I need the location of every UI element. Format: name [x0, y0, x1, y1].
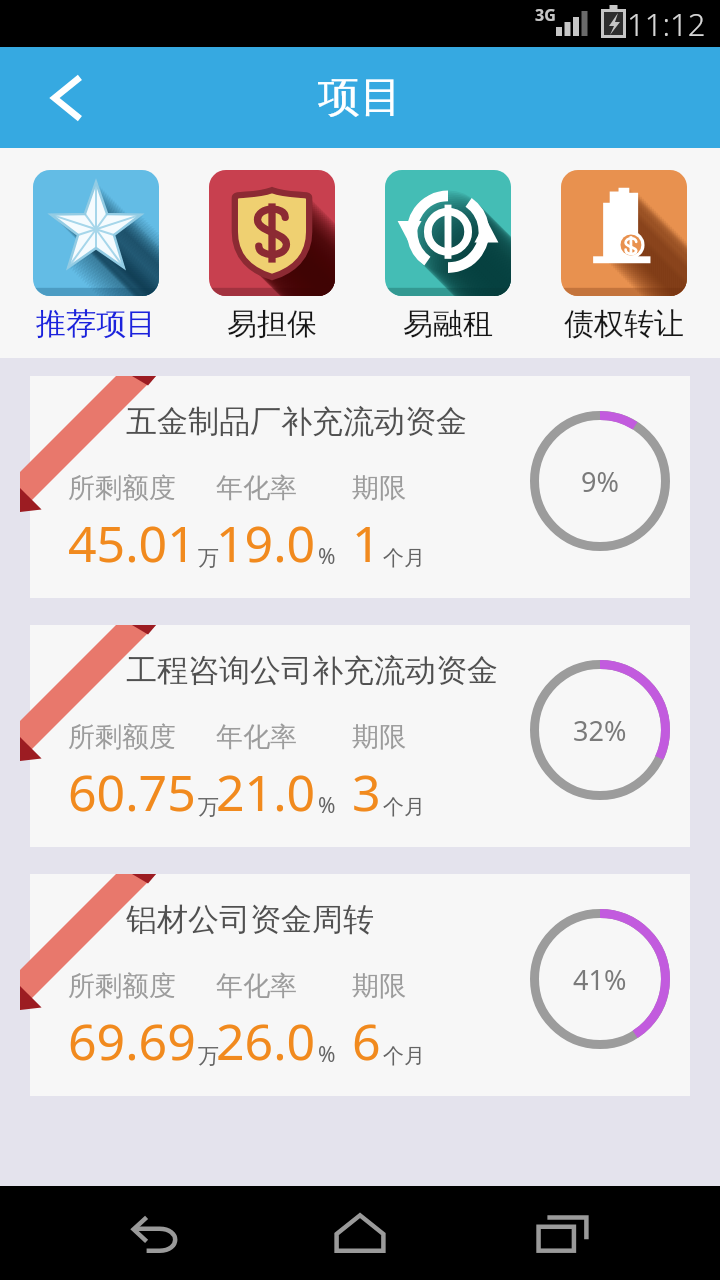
staticText: 3G: [535, 4, 556, 26]
other: 易担保: [20, 874, 180, 1034]
staticText: %: [318, 791, 336, 820]
staticText: 所剩额度: [68, 969, 176, 1003]
staticText: %: [318, 1040, 336, 1069]
staticText: 6: [352, 1007, 381, 1075]
staticText: 铝材公司资金周转: [126, 900, 374, 939]
other: 易担保: [20, 625, 180, 785]
staticText: 19.0: [216, 509, 316, 577]
button[interactable]: 铝材公司资金周转: [30, 874, 690, 1096]
staticText: 五金制品厂补充流动资金: [126, 402, 467, 441]
staticText: 3: [352, 758, 381, 826]
staticText: 易担保: [227, 305, 317, 343]
staticText: 69.69: [68, 1007, 196, 1075]
staticText: 个月: [383, 545, 425, 571]
staticText: 工程咨询公司补充流动资金: [126, 651, 498, 690]
staticText: 年化率: [216, 720, 297, 754]
button[interactable]: Back: [34, 67, 96, 129]
button[interactable]: 五金制品厂补充流动资金: [30, 376, 690, 598]
staticText: 个月: [383, 794, 425, 820]
staticText: 所剩额度: [68, 720, 176, 754]
staticText: 所剩额度: [68, 471, 176, 505]
staticText: 项目: [318, 71, 402, 124]
staticText: 9%: [581, 463, 619, 500]
button[interactable]: 推荐项目: [16, 170, 176, 343]
staticText: 年化率: [216, 969, 297, 1003]
other: 易担保: [20, 376, 180, 536]
staticText: 21.0: [216, 758, 316, 826]
staticText: 26.0: [216, 1007, 316, 1075]
button[interactable]: Back: [111, 1187, 203, 1279]
staticText: 万: [198, 1043, 216, 1069]
staticText: 41%: [573, 961, 627, 998]
staticText: 60.75: [68, 758, 196, 826]
staticText: 45.01: [68, 509, 196, 577]
staticText: 债权转让: [564, 305, 684, 343]
staticText: %: [318, 542, 336, 571]
staticText: 期限: [352, 471, 406, 505]
button[interactable]: 易担保: [192, 170, 352, 343]
staticText: 万: [198, 545, 216, 571]
staticText: 期限: [352, 720, 406, 754]
staticText: 期限: [352, 969, 406, 1003]
staticText: 万: [198, 794, 216, 820]
staticText: 32%: [573, 712, 627, 749]
staticText: 推荐项目: [36, 305, 156, 343]
button[interactable]: 易融租: [368, 170, 528, 343]
button[interactable]: Recent apps: [517, 1187, 609, 1279]
button[interactable]: 工程咨询公司补充流动资金: [30, 625, 690, 847]
staticText: 1: [352, 509, 381, 577]
staticText: 个月: [383, 1043, 425, 1069]
staticText: 易融租: [403, 305, 493, 343]
staticText: 11:12: [627, 3, 706, 45]
button[interactable]: 债权转让: [544, 170, 704, 343]
staticText: 年化率: [216, 471, 297, 505]
button[interactable]: Home: [314, 1187, 406, 1279]
